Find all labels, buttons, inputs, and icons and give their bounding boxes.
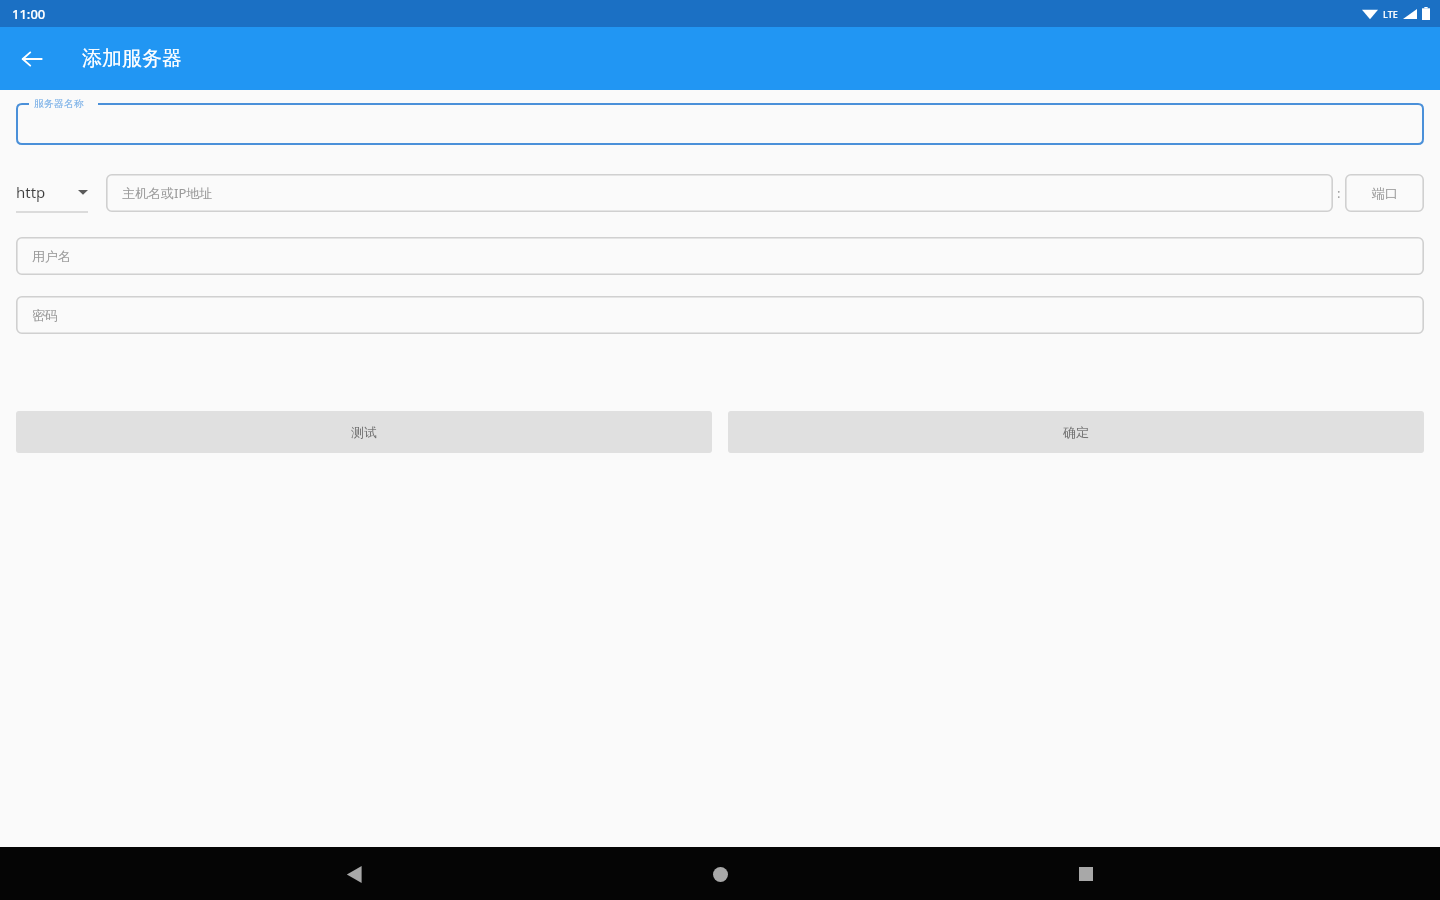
staticText: 服务器名称 (34, 97, 84, 110)
button[interactable]: 用户名 (16, 237, 1424, 275)
staticText: 11:00 (12, 5, 46, 23)
staticText: 测试 (351, 424, 377, 440)
button[interactable]: Back (330, 850, 378, 898)
staticText: 端口 (1372, 185, 1398, 201)
staticText: 确定 (1063, 424, 1089, 440)
button[interactable]: 主机名或IP地址 (106, 174, 1333, 212)
button[interactable]: http (16, 173, 88, 213)
staticText: 密码 (32, 307, 58, 323)
staticText: LTE (1383, 8, 1398, 20)
staticText: 用户名 (32, 248, 71, 264)
staticText: 主机名或IP地址 (122, 184, 213, 202)
staticText: 添加服务器 (82, 46, 182, 71)
button[interactable]: Back (10, 37, 54, 81)
button[interactable]: 服务器名称 (16, 103, 1424, 145)
staticText: : (1337, 184, 1341, 202)
button[interactable]: Home (696, 850, 744, 898)
button[interactable]: 确定 (728, 411, 1424, 453)
button[interactable]: 密码 (16, 296, 1424, 334)
staticText: http (16, 182, 46, 202)
button[interactable]: 端口 (1345, 174, 1424, 212)
button[interactable]: 测试 (16, 411, 712, 453)
button[interactable]: Recent apps (1062, 850, 1110, 898)
